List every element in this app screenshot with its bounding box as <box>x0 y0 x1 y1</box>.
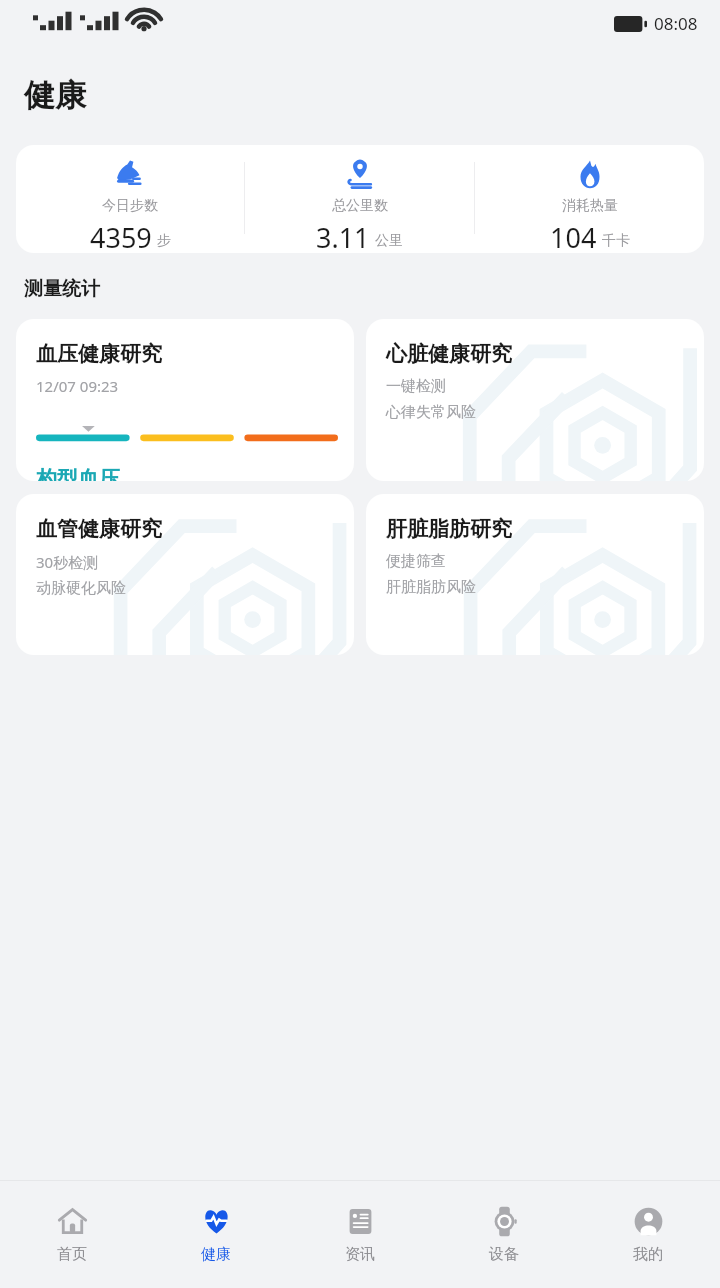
staticText: 心脏健康研究 <box>386 341 512 367</box>
staticText: 千卡 <box>602 232 630 250</box>
staticText: 消耗热量 <box>562 197 618 215</box>
staticText: 4359 <box>90 219 152 253</box>
staticText: 30秒检测 <box>36 552 99 572</box>
staticText: 健康 <box>24 76 86 115</box>
staticText: 血管健康研究 <box>36 516 162 542</box>
staticText: 3.11 <box>316 219 370 253</box>
staticText: 设备 <box>489 1245 519 1264</box>
staticText: 一键检测 <box>386 377 446 396</box>
staticText: 104 <box>550 219 597 253</box>
staticText: 总公里数 <box>332 197 388 215</box>
staticText: 08:08 <box>654 12 698 35</box>
button[interactable]: 资讯 <box>288 1205 432 1264</box>
staticText: 血压健康研究 <box>36 341 162 367</box>
staticText: 心律失常风险 <box>386 403 476 422</box>
button[interactable]: 今日步数 <box>16 145 704 253</box>
staticText: 测量统计 <box>24 277 100 301</box>
button[interactable]: 健康 <box>144 1205 288 1264</box>
button[interactable]: 首页 <box>0 1205 144 1264</box>
staticText: 杓型血压 <box>36 466 120 481</box>
button[interactable]: 血压健康研究 <box>16 319 354 481</box>
staticText: 公里 <box>375 232 403 250</box>
button[interactable]: 血管健康研究 <box>16 494 354 655</box>
staticText: 12/07 09:23 <box>36 376 119 396</box>
button[interactable]: 我的 <box>576 1205 720 1264</box>
staticText: 我的 <box>633 1245 663 1264</box>
button[interactable]: 肝脏脂肪研究 <box>366 494 704 655</box>
button[interactable]: 心脏健康研究 <box>366 319 704 481</box>
staticText: 肝脏脂肪风险 <box>386 578 476 597</box>
staticText: 资讯 <box>345 1245 375 1264</box>
staticText: 今日步数 <box>102 197 158 215</box>
staticText: 健康 <box>201 1245 231 1264</box>
staticText: 肝脏脂肪研究 <box>386 516 512 542</box>
staticText: 首页 <box>57 1245 87 1264</box>
staticText: 步 <box>157 232 171 250</box>
button[interactable]: 设备 <box>432 1205 576 1264</box>
staticText: 动脉硬化风险 <box>36 579 126 598</box>
staticText: 便捷筛查 <box>386 552 446 571</box>
